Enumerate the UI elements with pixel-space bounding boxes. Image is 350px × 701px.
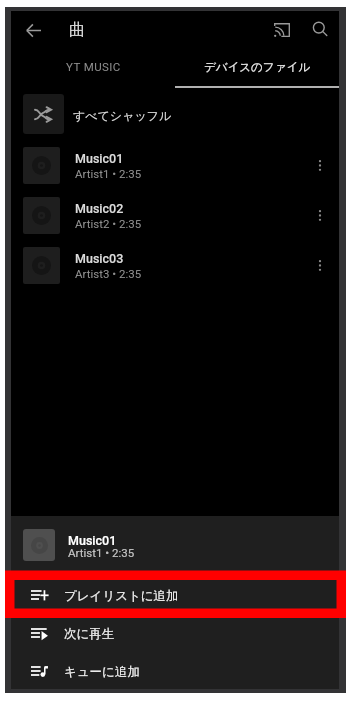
button[interactable]: More options — [306, 151, 334, 179]
button[interactable]: Music03 — [11, 240, 339, 290]
staticText: 次に再生 — [64, 626, 115, 642]
button[interactable]: More options — [306, 201, 334, 229]
button[interactable]: Music01 — [11, 140, 339, 190]
staticText: すべてシャッフル — [73, 108, 172, 123]
staticText: Music01 — [68, 533, 117, 548]
button[interactable]: デバイスのファイル — [175, 48, 339, 88]
button[interactable]: Search — [307, 16, 335, 44]
staticText: キューに追加 — [64, 664, 140, 680]
staticText: Artist2 • 2:35 — [75, 217, 142, 230]
staticText: Music01 — [75, 151, 124, 166]
button[interactable]: 次に再生 — [11, 612, 339, 650]
button[interactable]: Cast — [268, 16, 296, 44]
button[interactable]: Back — [20, 17, 46, 43]
staticText: Music02 — [75, 201, 124, 216]
button[interactable]: YT MUSIC — [11, 48, 175, 88]
button[interactable]: キューに追加 — [11, 650, 339, 688]
staticText: YT MUSIC — [66, 60, 121, 73]
staticText: プレイリストに追加 — [64, 588, 179, 604]
button[interactable]: すべてシャッフル — [11, 94, 339, 140]
staticText: Artist1 • 2:35 — [68, 546, 135, 559]
staticText: Artist3 • 2:35 — [75, 267, 142, 280]
staticText: デバイスのファイル — [204, 60, 310, 74]
button[interactable]: Music02 — [11, 190, 339, 240]
staticText: Music03 — [75, 251, 124, 266]
button[interactable]: More options — [306, 251, 334, 279]
staticText: Artist1 • 2:35 — [75, 167, 142, 180]
staticText: 曲 — [69, 20, 85, 40]
button[interactable]: プレイリストに追加 — [11, 574, 339, 612]
